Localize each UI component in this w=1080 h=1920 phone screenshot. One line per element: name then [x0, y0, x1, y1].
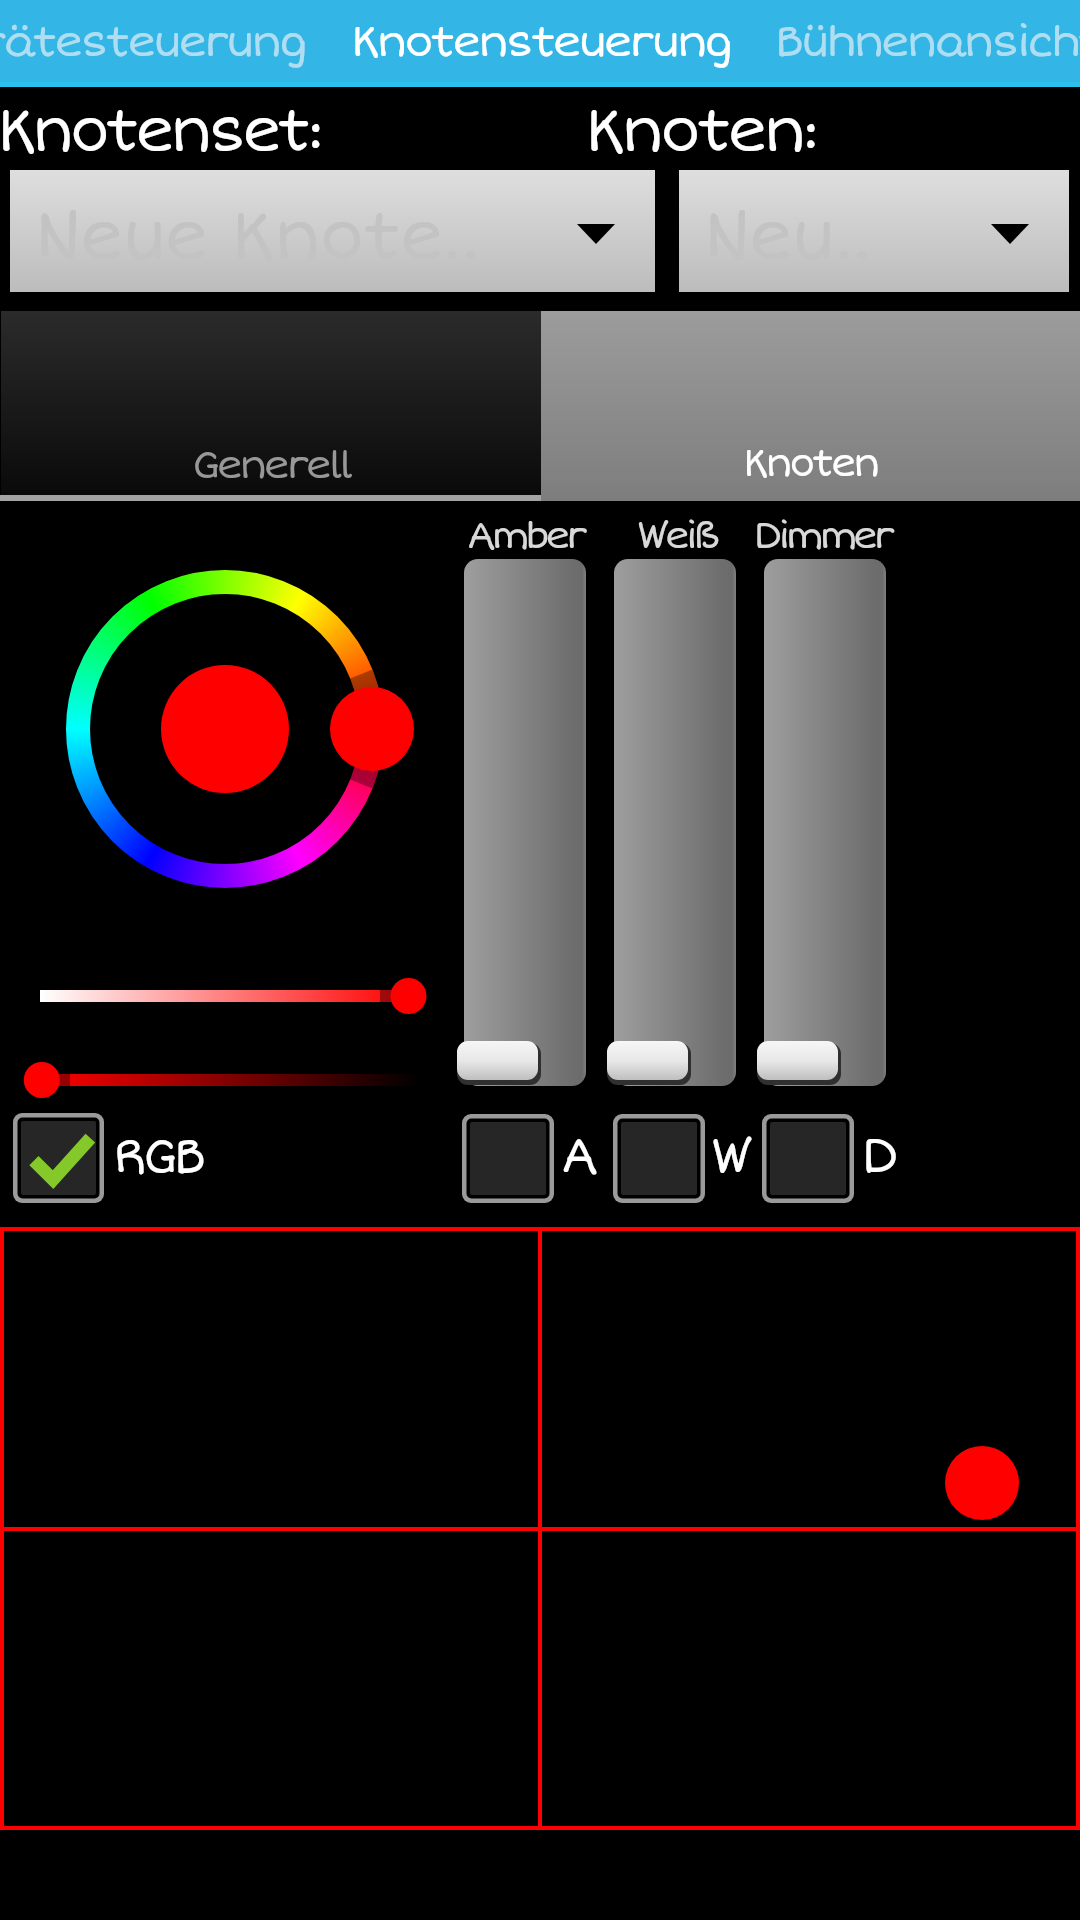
staticText: RGB: [113, 1128, 203, 1187]
staticText: D: [862, 1127, 896, 1186]
button[interactable]: Toggle: [613, 1114, 705, 1203]
button[interactable]: Level slider: [753, 559, 887, 1086]
button[interactable]: Neu..: [679, 170, 1069, 292]
staticText: W: [711, 1127, 750, 1186]
button[interactable]: Toggle: [462, 1114, 554, 1203]
staticText: Generell: [192, 442, 351, 490]
button[interactable]: [752, 0, 1080, 87]
button[interactable]: Stage view: [0, 1227, 1080, 1830]
staticText: Knoten: [743, 441, 878, 488]
button[interactable]: Knoten: [541, 311, 1080, 501]
staticText: Knoten:: [585, 94, 817, 168]
other: Open dropdown: [577, 224, 615, 244]
button[interactable]: Saturation: [20, 970, 430, 1022]
staticText: Gerätesteuerung: [0, 16, 306, 69]
button[interactable]: RGB checked: [13, 1113, 104, 1203]
button[interactable]: Brightness: [20, 1054, 430, 1106]
staticText: Neu..: [704, 196, 871, 277]
button[interactable]: Generell: [1, 311, 541, 495]
staticText: A: [561, 1127, 595, 1186]
staticText: Knotensteuerung: [351, 16, 731, 69]
staticText: Dimmer: [754, 513, 892, 559]
staticText: Bühnenansicht: [775, 16, 1080, 69]
staticText: Weiß: [637, 513, 716, 559]
button[interactable]: Color wheel: [66, 570, 384, 888]
button[interactable]: Level slider: [603, 559, 737, 1086]
staticText: Knotenset:: [0, 95, 321, 168]
button[interactable]: Toggle: [762, 1114, 854, 1203]
button[interactable]: [0, 0, 330, 87]
other: Open dropdown: [991, 224, 1029, 244]
button[interactable]: Level slider: [453, 559, 587, 1086]
staticText: Neue Knote..: [35, 196, 479, 277]
button[interactable]: Neue Knote..: [10, 170, 655, 292]
button[interactable]: [330, 0, 752, 87]
staticText: Amber: [467, 513, 584, 559]
